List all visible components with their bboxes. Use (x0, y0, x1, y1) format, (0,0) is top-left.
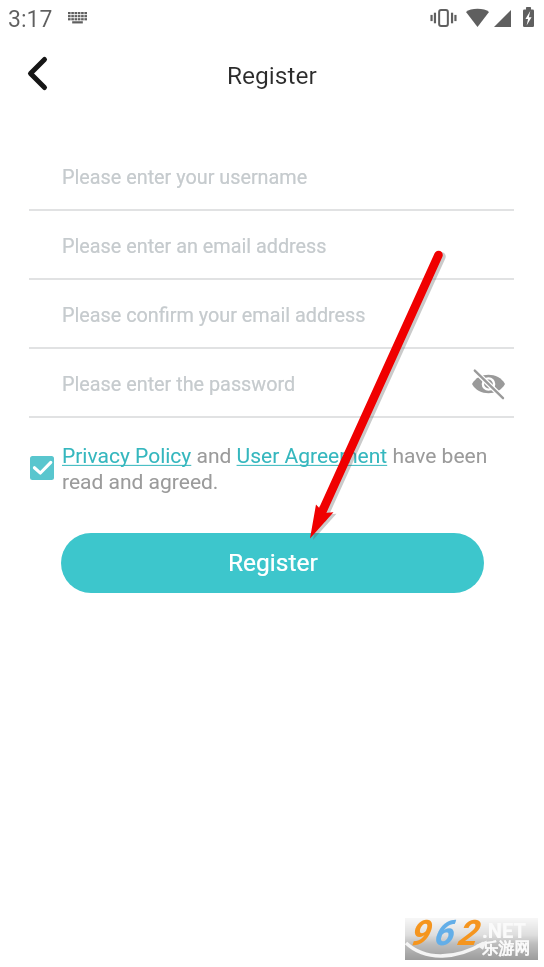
staticText: Privacy Policy and User Agreement have b… (62, 444, 496, 494)
staticText: 乐游网 (482, 939, 530, 959)
button[interactable]: Privacy Policy (62, 446, 192, 468)
staticText: Please enter your username (62, 166, 308, 189)
staticText: 9 (409, 913, 429, 954)
staticText: Register (228, 548, 318, 577)
button[interactable]: Please enter your username (0, 142, 544, 211)
button[interactable]: Back (8, 44, 66, 102)
button[interactable]: Please enter the password (0, 349, 544, 418)
button[interactable]: Please enter an email address (0, 211, 544, 280)
staticText: Please confirm your email address (62, 304, 366, 327)
button[interactable]: Agree to terms (30, 456, 54, 480)
button[interactable]: User Agreement (237, 446, 388, 468)
staticText: 6 (433, 913, 453, 954)
button[interactable]: Show password (468, 364, 508, 404)
staticText: 2 (457, 913, 477, 954)
staticText: Please enter the password (62, 373, 296, 396)
staticText: Please enter an email address (62, 235, 327, 258)
staticText: 3:17 (8, 6, 53, 33)
staticText: Register (227, 61, 317, 90)
staticText: .NET (482, 919, 526, 942)
button[interactable]: Please confirm your email address (0, 280, 544, 349)
button[interactable]: Register (61, 533, 484, 593)
